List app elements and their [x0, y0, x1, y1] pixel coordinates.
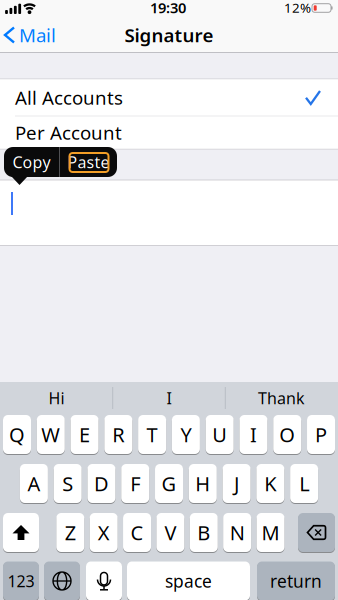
- button[interactable]: Hi: [1, 383, 111, 413]
- staticText: B: [197, 519, 210, 546]
- button[interactable]: L: [290, 463, 318, 503]
- button[interactable]: R: [104, 414, 132, 454]
- staticText: Per Account: [15, 120, 122, 145]
- staticText: 123: [7, 570, 34, 592]
- button[interactable]: Next keyboard: [44, 561, 80, 600]
- staticText: S: [62, 470, 73, 497]
- button[interactable]: Copy: [4, 147, 58, 177]
- staticText: T: [147, 421, 158, 448]
- button[interactable]: return: [257, 561, 335, 600]
- staticText: Y: [180, 421, 191, 448]
- staticText: A: [27, 470, 40, 497]
- button[interactable]: Dictate: [86, 561, 122, 600]
- staticText: D: [94, 470, 109, 497]
- staticText: W: [41, 421, 60, 448]
- button[interactable]: W: [37, 414, 65, 454]
- staticText: R: [112, 421, 124, 448]
- staticText: Q: [9, 421, 25, 448]
- button[interactable]: T: [138, 414, 166, 454]
- button[interactable]: Delete: [298, 512, 335, 552]
- button[interactable]: B: [190, 512, 218, 552]
- button[interactable]: 123: [3, 561, 39, 600]
- staticText: I: [166, 387, 171, 409]
- button[interactable]: C: [123, 512, 151, 552]
- staticText: L: [299, 470, 309, 497]
- button[interactable]: Shift: [3, 512, 39, 552]
- staticText: M: [261, 519, 279, 546]
- staticText: C: [130, 519, 143, 546]
- staticText: Copy: [12, 151, 50, 173]
- button[interactable]: Z: [56, 512, 84, 552]
- button[interactable]: U: [206, 414, 234, 454]
- button[interactable]: V: [156, 512, 184, 552]
- staticText: Hi: [48, 387, 64, 409]
- staticText: Z: [65, 519, 76, 546]
- staticText: return: [270, 569, 322, 592]
- staticText: O: [279, 421, 295, 448]
- staticText: J: [234, 470, 239, 497]
- staticText: G: [161, 470, 176, 497]
- button[interactable]: N: [223, 512, 251, 552]
- button[interactable]: Y: [172, 414, 200, 454]
- staticText: Mail: [19, 23, 56, 47]
- button[interactable]: Paste: [60, 147, 116, 177]
- button[interactable]: P: [307, 414, 335, 454]
- button[interactable]: E: [71, 414, 99, 454]
- button[interactable]: space: [127, 561, 250, 600]
- button[interactable]: S: [54, 463, 82, 503]
- button[interactable]: D: [87, 463, 115, 503]
- button[interactable]: I: [114, 383, 224, 413]
- staticText: E: [79, 421, 90, 448]
- button[interactable]: G: [155, 463, 183, 503]
- staticText: U: [212, 421, 227, 448]
- staticText: F: [130, 470, 140, 497]
- staticText: V: [164, 519, 176, 546]
- staticText: I: [250, 421, 257, 448]
- button[interactable]: H: [189, 463, 217, 503]
- staticText: Paste: [67, 151, 109, 173]
- staticText: H: [195, 470, 210, 497]
- button[interactable]: J: [223, 463, 251, 503]
- staticText: All Accounts: [15, 85, 123, 110]
- button[interactable]: Per Account: [0, 116, 338, 148]
- button[interactable]: I: [239, 414, 267, 454]
- button[interactable]: A: [20, 463, 48, 503]
- button[interactable]: M: [256, 512, 284, 552]
- button[interactable]: Mail: [5, 23, 56, 47]
- button[interactable]: Q: [3, 414, 31, 454]
- button[interactable]: All Accounts: [0, 79, 338, 115]
- staticText: Signature: [124, 23, 213, 47]
- button[interactable]: O: [273, 414, 301, 454]
- staticText: 19:30: [150, 0, 186, 17]
- button[interactable]: K: [256, 463, 284, 503]
- button[interactable]: F: [121, 463, 149, 503]
- staticText: space: [165, 569, 212, 592]
- staticText: 12%: [284, 0, 311, 16]
- button[interactable]: Thank: [226, 383, 336, 413]
- staticText: P: [315, 421, 327, 448]
- button[interactable]: X: [90, 512, 118, 552]
- staticText: N: [230, 519, 245, 546]
- staticText: X: [98, 519, 110, 546]
- staticText: Thank: [258, 387, 305, 409]
- staticText: K: [264, 470, 276, 497]
